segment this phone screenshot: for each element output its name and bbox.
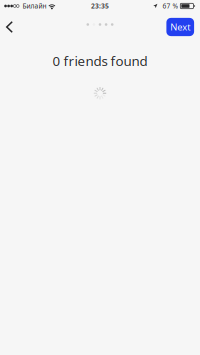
staticText: 67 %	[162, 2, 178, 10]
staticText: 0 friends found	[52, 52, 147, 70]
staticText: 23:35	[91, 2, 109, 10]
staticText: Next	[170, 21, 190, 33]
button[interactable]: Back	[0, 13, 22, 37]
staticText: Билайн	[22, 2, 46, 10]
button[interactable]: Next	[166, 14, 194, 36]
